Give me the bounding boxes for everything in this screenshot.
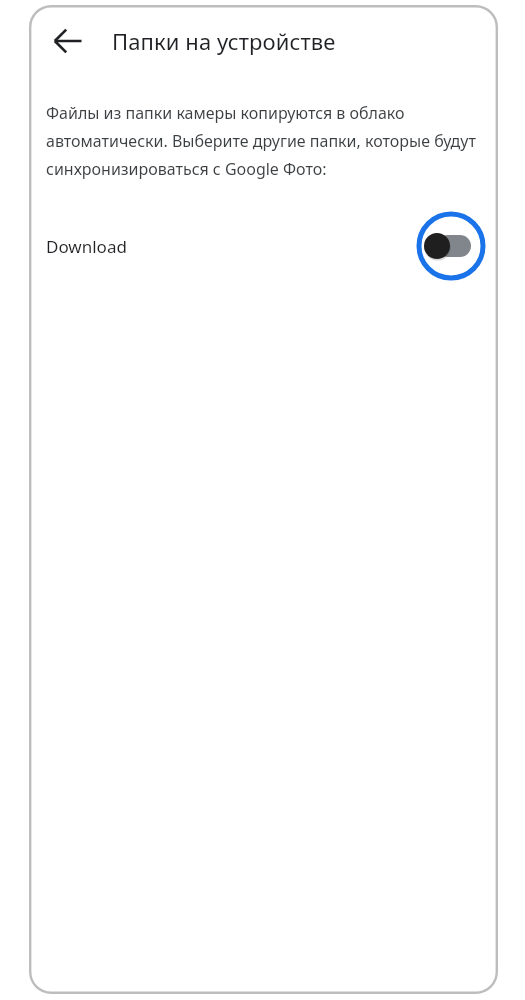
staticText: Файлы из папки камеры копируются в облак… (46, 102, 485, 180)
button[interactable]: Синхронизировать папку Download (413, 208, 489, 284)
button[interactable]: Download (29, 208, 498, 284)
staticText: Папки на устройстве (112, 26, 336, 56)
staticText: Download (46, 235, 127, 258)
button[interactable]: Назад (44, 17, 92, 65)
